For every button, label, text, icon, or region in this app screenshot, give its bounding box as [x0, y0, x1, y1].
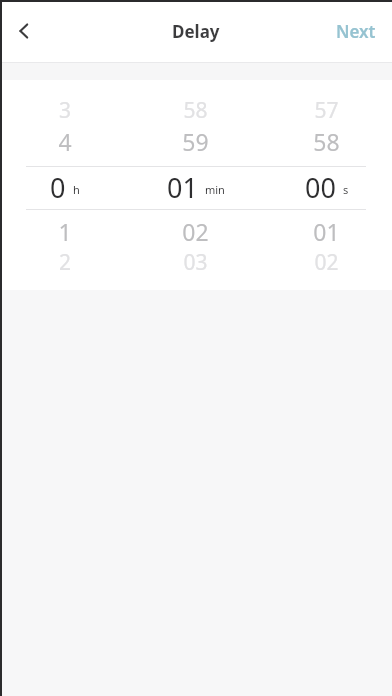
staticText: 03: [130, 248, 261, 277]
staticText: 00: [305, 169, 336, 201]
staticText: 01: [261, 216, 392, 247]
staticText: 58: [261, 126, 392, 157]
staticText: 1: [0, 216, 130, 247]
staticText: 58: [130, 96, 261, 125]
staticText: Delay: [172, 20, 220, 43]
staticText: h: [73, 182, 80, 197]
staticText: 57: [261, 96, 392, 125]
staticText: 02: [130, 216, 261, 247]
staticText: s: [343, 182, 349, 197]
button[interactable]: Next: [320, 8, 392, 54]
button[interactable]: Back: [2, 9, 46, 53]
staticText: 0: [50, 169, 66, 201]
staticText: Next: [336, 20, 376, 43]
staticText: 2: [0, 248, 130, 277]
staticText: 3: [0, 96, 130, 125]
staticText: min: [205, 182, 225, 197]
staticText: 01: [167, 169, 198, 201]
staticText: 4: [0, 126, 130, 157]
staticText: 02: [261, 248, 392, 277]
staticText: 59: [130, 126, 261, 157]
